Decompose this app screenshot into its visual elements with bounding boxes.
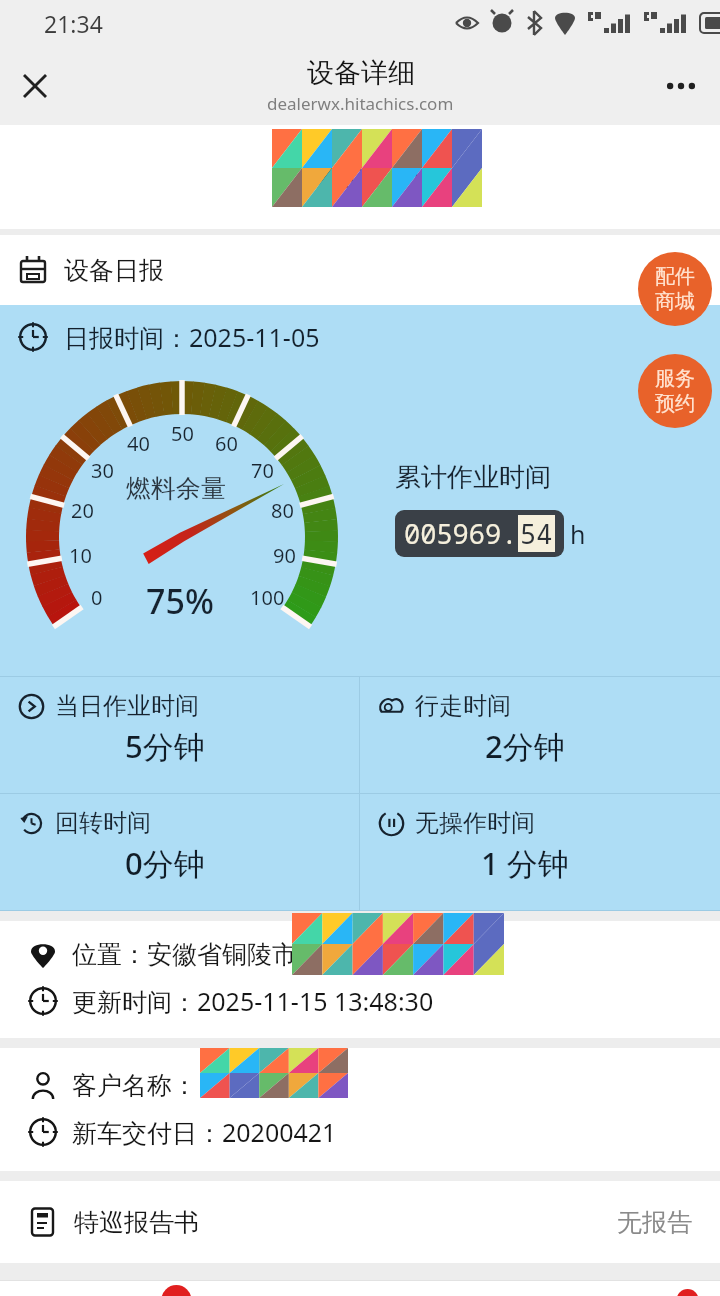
button[interactable]: 客户名称： bbox=[0, 1048, 720, 1171]
button[interactable]: Close bbox=[8, 59, 62, 113]
staticText: 40 bbox=[127, 430, 150, 457]
staticText: 累计作业时间 bbox=[395, 461, 551, 494]
button[interactable]: More options bbox=[654, 59, 708, 113]
staticText: ZX200-5 bbox=[301, 158, 407, 196]
staticText: 位置：安徽省铜陵市 bbox=[72, 939, 297, 970]
staticText: 行走时间 bbox=[415, 691, 511, 721]
button[interactable]: 无操作时间 bbox=[360, 794, 720, 910]
staticText: 燃料余量 bbox=[126, 473, 226, 504]
staticText: 回转时间 bbox=[55, 808, 151, 838]
staticText: ) bbox=[411, 158, 420, 196]
staticText: 无报告 bbox=[617, 1207, 692, 1238]
staticText: 配件 bbox=[655, 264, 695, 289]
button[interactable]: ZX200-5 bbox=[0, 125, 720, 229]
staticText: 1 分钟 bbox=[481, 842, 569, 884]
staticText: 005969. bbox=[404, 515, 518, 552]
staticText: 特巡报告书 bbox=[74, 1207, 199, 1238]
button[interactable]: 行走时间 bbox=[360, 677, 720, 793]
button[interactable]: 服务 bbox=[638, 354, 712, 428]
staticText: 预约 bbox=[655, 391, 695, 416]
button[interactable]: 回转时间 bbox=[0, 794, 359, 910]
staticText: 50 bbox=[171, 420, 194, 447]
staticText: 当日作业时间 bbox=[55, 691, 199, 721]
button[interactable]: 特巡报告书 bbox=[0, 1181, 720, 1263]
staticText: 30 bbox=[91, 457, 114, 484]
staticText: h bbox=[570, 517, 586, 551]
staticText: 70 bbox=[251, 457, 274, 484]
staticText: 90 bbox=[273, 542, 296, 569]
staticText: 设备日报 bbox=[64, 255, 164, 286]
staticText: 更新时间：2025-11-15 13:48:30 bbox=[72, 984, 434, 1018]
staticText: 2分钟 bbox=[485, 725, 565, 767]
staticText: 20 bbox=[71, 497, 94, 524]
button[interactable]: 当日作业时间 bbox=[0, 677, 359, 793]
staticText: 客户名称： bbox=[72, 1070, 197, 1101]
staticText: 10 bbox=[69, 542, 92, 569]
staticText: 设备详细 bbox=[307, 56, 415, 90]
button[interactable]: 位置：安徽省铜陵市 bbox=[0, 921, 720, 1038]
staticText: 无操作时间 bbox=[415, 808, 535, 838]
staticText: 新车交付日：20200421 bbox=[72, 1115, 337, 1149]
staticText: 5分钟 bbox=[125, 725, 205, 767]
staticText: 日报时间：2025-11-05 bbox=[64, 320, 320, 354]
staticText: dealerwx.hitachics.com bbox=[267, 92, 454, 115]
staticText: 60 bbox=[215, 430, 238, 457]
staticText: 0 bbox=[91, 584, 103, 611]
button[interactable]: 设备日报 bbox=[18, 235, 720, 305]
staticText: 服务 bbox=[655, 366, 695, 391]
staticText: 100 bbox=[250, 584, 285, 611]
staticText: 80 bbox=[271, 497, 294, 524]
staticText: 54 bbox=[520, 515, 553, 552]
staticText: 21:34 bbox=[44, 8, 103, 39]
button[interactable]: 配件 bbox=[638, 252, 712, 326]
button[interactable]: 日报时间：2025-11-05 bbox=[18, 305, 720, 369]
staticText: 商城 bbox=[655, 289, 695, 314]
staticText: 0分钟 bbox=[125, 842, 205, 884]
staticText: 75% bbox=[146, 578, 214, 624]
